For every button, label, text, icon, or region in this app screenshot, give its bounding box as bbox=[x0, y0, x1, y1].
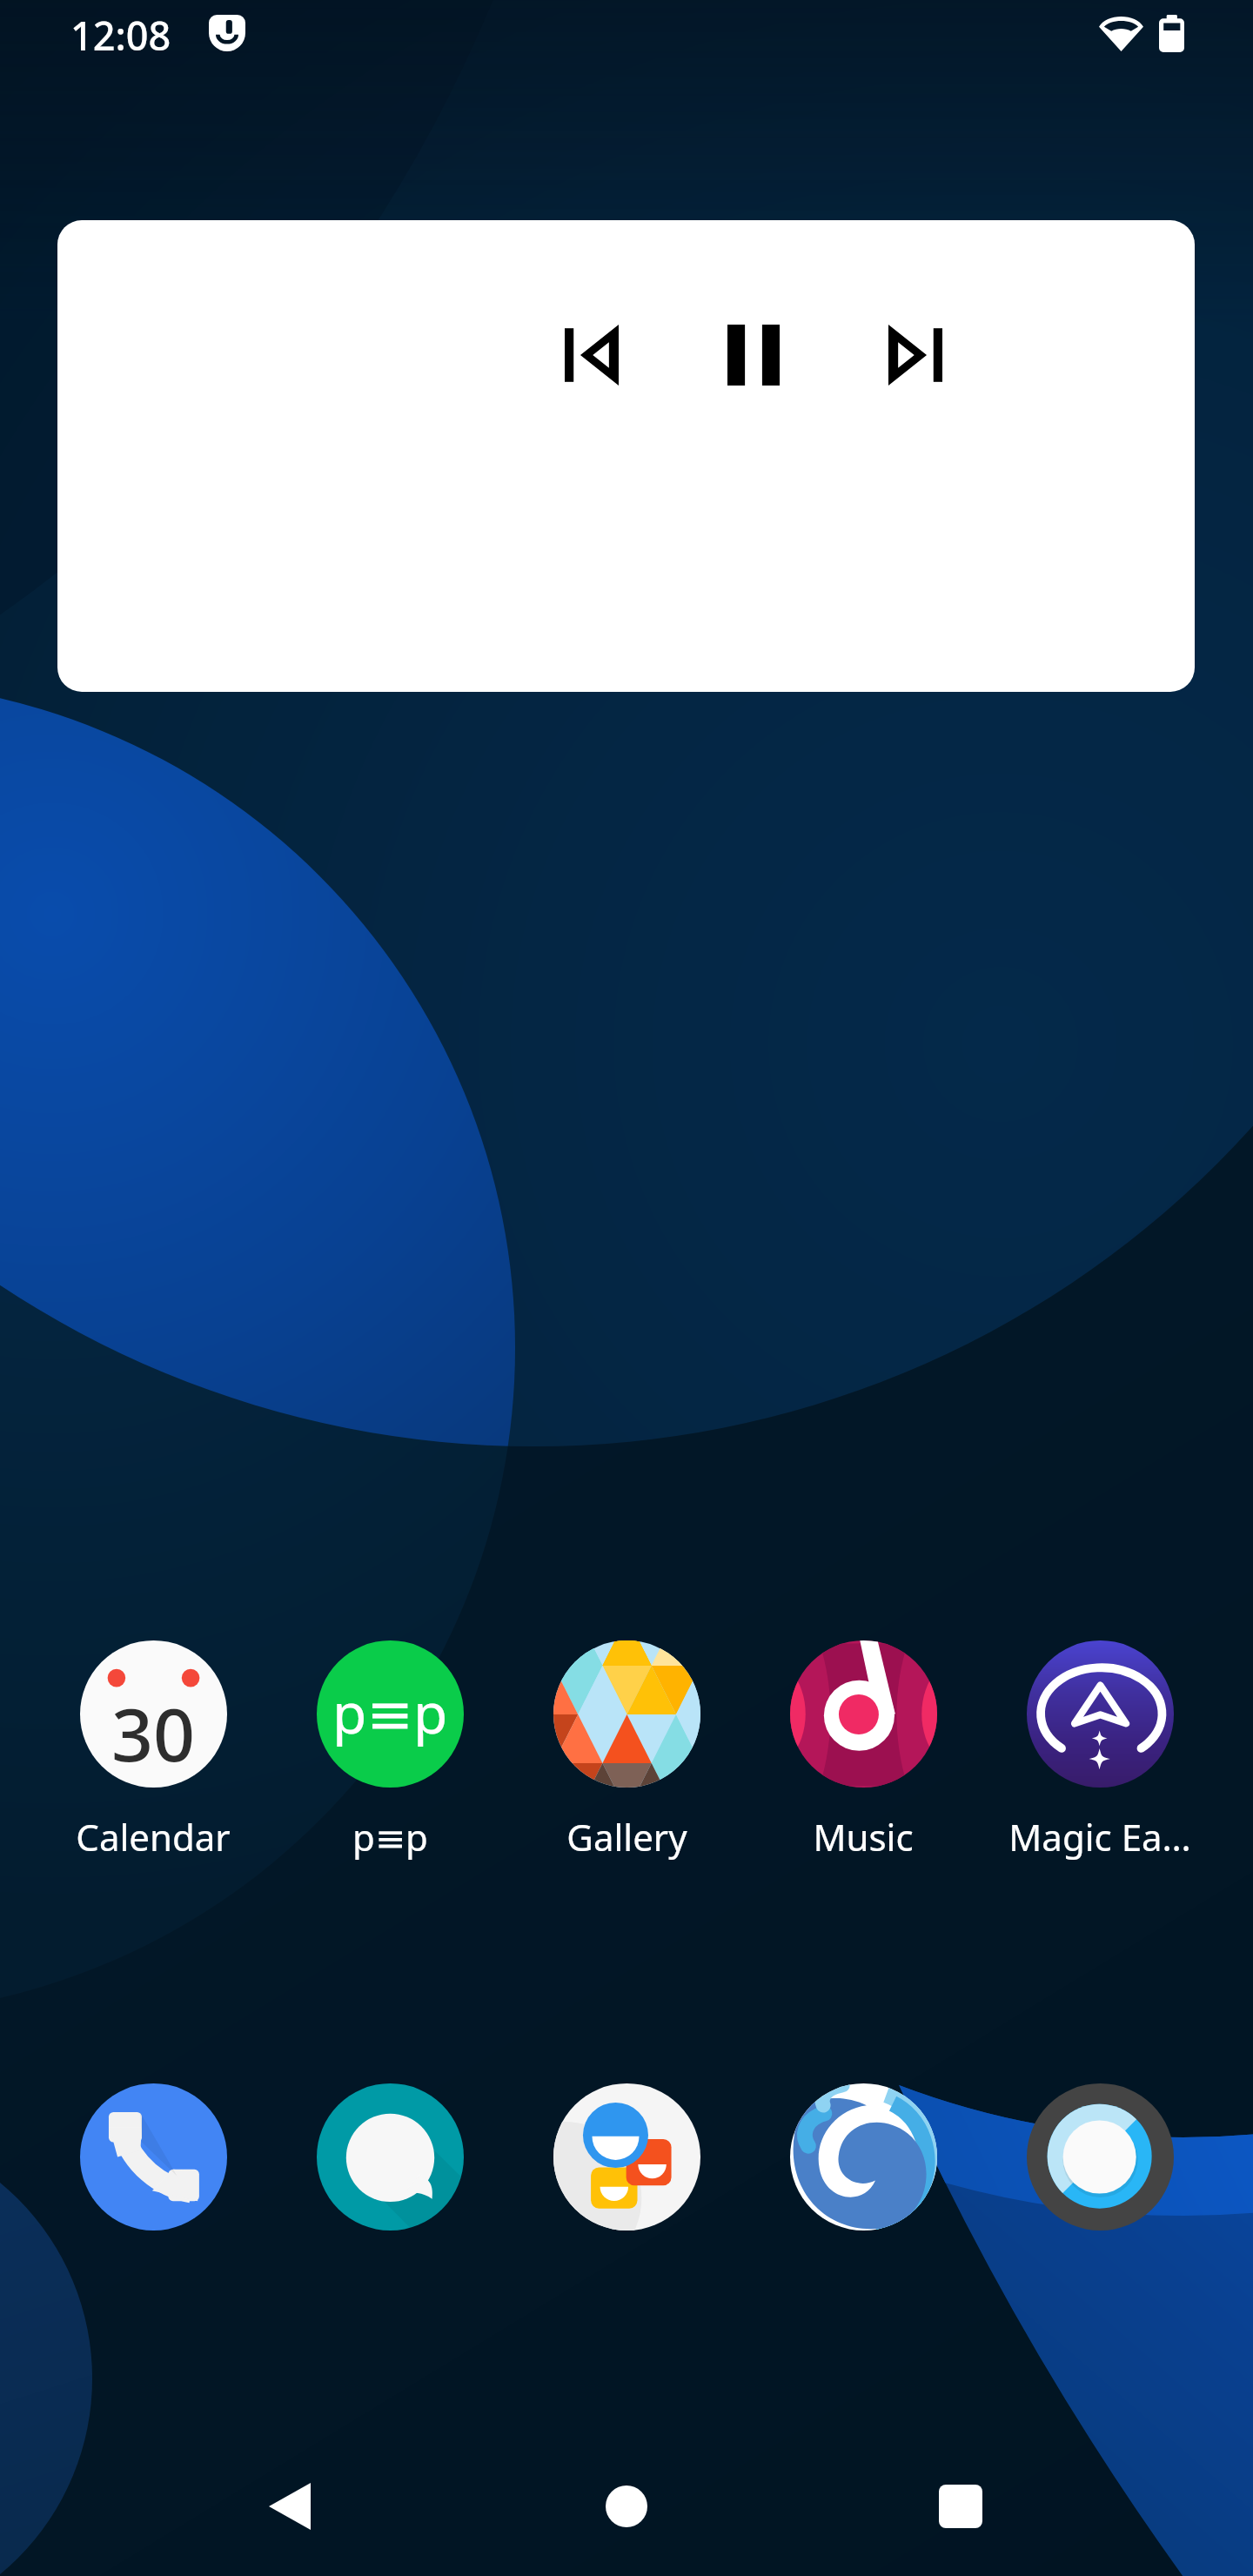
staticText: Magic Ea… bbox=[1008, 1812, 1191, 1862]
staticText: p≡p bbox=[352, 1812, 428, 1862]
button[interactable]: Contacts bbox=[508, 2083, 745, 2231]
staticText: p≡p bbox=[332, 1674, 448, 1750]
button[interactable]: 30 bbox=[35, 1640, 271, 1862]
button[interactable]: Messages bbox=[271, 2083, 508, 2231]
button[interactable]: p≡p bbox=[271, 1640, 508, 1862]
button[interactable]: Recent apps bbox=[882, 2428, 1039, 2576]
button[interactable]: Next track bbox=[863, 303, 968, 407]
button[interactable]: Music bbox=[745, 1640, 982, 1862]
button[interactable]: Back bbox=[211, 2428, 368, 2576]
staticText: Gallery bbox=[566, 1812, 687, 1862]
button[interactable]: Camera bbox=[982, 2083, 1218, 2231]
staticText: 30 bbox=[111, 1683, 196, 1782]
button[interactable]: Magic Ea… bbox=[982, 1640, 1218, 1862]
button[interactable]: Pause bbox=[701, 303, 806, 407]
button[interactable]: Previous track bbox=[57, 220, 1195, 692]
button[interactable]: Phone bbox=[35, 2083, 271, 2231]
button[interactable]: Gallery bbox=[508, 1640, 745, 1862]
staticText: Calendar bbox=[76, 1812, 231, 1862]
button[interactable]: Previous track bbox=[539, 303, 644, 407]
button[interactable]: Browser bbox=[745, 2083, 982, 2231]
staticText: Music bbox=[813, 1812, 914, 1862]
staticText: 12:08 bbox=[70, 9, 171, 62]
button[interactable]: Home bbox=[548, 2428, 705, 2576]
